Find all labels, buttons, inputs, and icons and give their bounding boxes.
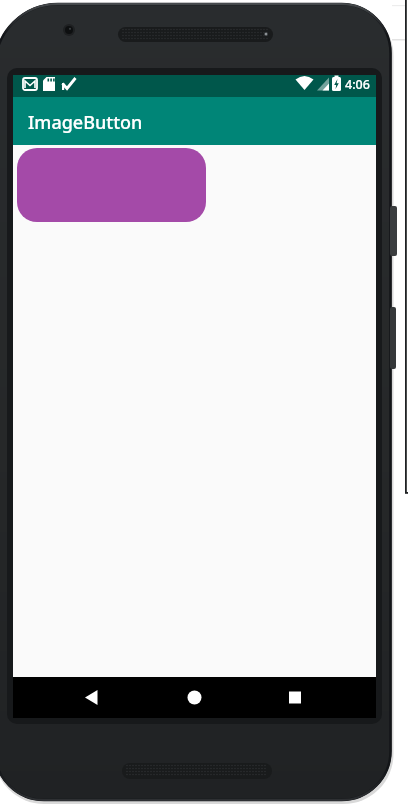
staticText: ImageButton [28, 110, 143, 135]
button[interactable] [170, 677, 218, 718]
staticText: 4:06 [345, 76, 370, 93]
button[interactable] [271, 677, 319, 718]
button[interactable] [17, 148, 206, 222]
button[interactable] [67, 677, 115, 718]
